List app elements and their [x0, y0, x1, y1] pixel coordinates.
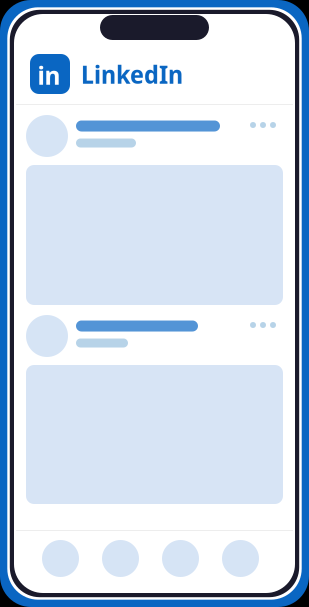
button[interactable]: My Network — [102, 540, 139, 577]
staticText: in — [37, 58, 60, 92]
button[interactable]: More options — [243, 316, 283, 334]
staticText: LinkedIn — [81, 57, 183, 91]
button[interactable]: More options — [243, 116, 283, 134]
button[interactable]: Jobs — [222, 540, 259, 577]
button[interactable]: in — [30, 54, 183, 94]
button[interactable]: Notifications — [162, 540, 199, 577]
button[interactable]: Home — [42, 540, 79, 577]
